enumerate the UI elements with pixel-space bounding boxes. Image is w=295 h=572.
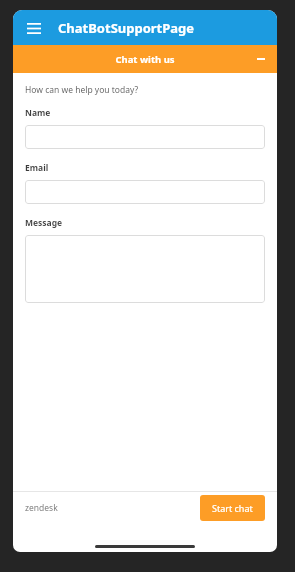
button[interactable]: Start chat	[200, 495, 265, 521]
button[interactable]: Email input field	[25, 180, 265, 204]
staticText: How can we help you today?	[25, 84, 139, 96]
button[interactable]: Open navigation menu	[22, 16, 46, 40]
button[interactable]: Message input field	[25, 235, 265, 303]
staticText: zendesk	[25, 502, 58, 514]
staticText: Email	[25, 162, 49, 174]
button[interactable]: Name input field	[25, 125, 265, 149]
staticText: Message	[25, 217, 63, 229]
staticText: Chat with us	[115, 53, 175, 66]
staticText: ChatBotSupportPage	[58, 19, 195, 37]
staticText: Name	[25, 107, 51, 119]
button[interactable]: Chat with us	[13, 45, 277, 73]
button[interactable]: Minimize chat	[251, 49, 271, 69]
staticText: Start chat	[212, 502, 253, 514]
